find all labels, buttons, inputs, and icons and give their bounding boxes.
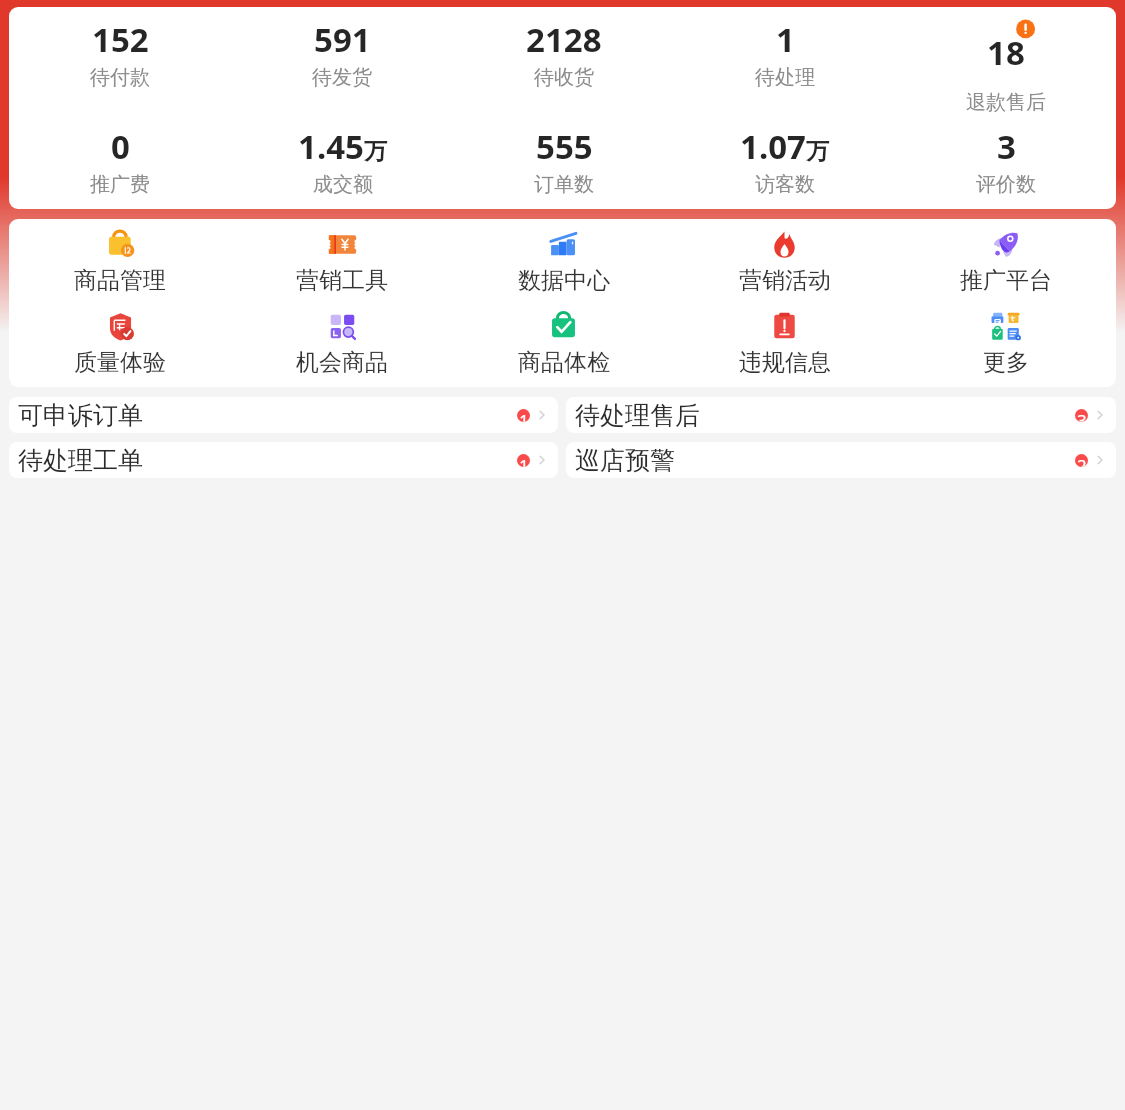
staticText: 巡店预警 (575, 445, 675, 476)
staticText: 3 (997, 124, 1016, 169)
staticText: 评价数 (976, 172, 1036, 197)
staticText: 2 (1077, 454, 1087, 467)
button[interactable]: 数据中心 (453, 227, 674, 297)
button[interactable]: 商品体检 (453, 309, 674, 379)
button[interactable]: 营销活动 (674, 227, 895, 297)
staticText: 1 (519, 409, 529, 422)
staticText: 质量体验 (74, 348, 166, 377)
staticText: 152 (92, 17, 149, 62)
staticText: 待发货 (312, 65, 372, 90)
staticText: 2128 (526, 17, 602, 62)
button[interactable]: 待处理工单 (9, 442, 558, 478)
button[interactable]: 可申诉订单 (9, 397, 558, 433)
staticText: 营销活动 (739, 266, 831, 295)
staticText: 待处理 (755, 65, 815, 90)
staticText: 3 (1077, 409, 1087, 422)
staticText: 数据中心 (518, 266, 610, 295)
staticText: 成交额 (313, 172, 373, 197)
staticText: 机会商品 (296, 348, 388, 377)
button[interactable]: 机会商品 (231, 309, 453, 379)
staticText: 商品体检 (518, 348, 610, 377)
staticText: 1.07万 (740, 124, 829, 169)
button[interactable]: 待处理售后 (566, 397, 1116, 433)
staticText: 订单数 (534, 172, 594, 197)
staticText: 访客数 (755, 172, 815, 197)
button[interactable]: 2128 (453, 17, 674, 90)
button[interactable]: 巡店预警 (566, 442, 1116, 478)
button[interactable]: 商品管理 (9, 227, 231, 297)
button[interactable]: 555 (453, 124, 674, 197)
button[interactable]: 营销工具 (231, 227, 453, 297)
button[interactable]: 1 (674, 17, 895, 90)
staticText: 待处理售后 (575, 400, 700, 431)
staticText: 1 (776, 17, 795, 62)
staticText: 商品管理 (74, 266, 166, 295)
staticText: 更多 (983, 348, 1029, 377)
staticText: 推广费 (90, 172, 150, 197)
staticText: 待收货 (534, 65, 594, 90)
button[interactable]: 152 (9, 17, 231, 90)
staticText: 营销工具 (296, 266, 388, 295)
staticText: 可申诉订单 (18, 400, 143, 431)
button[interactable]: 质量体验 (9, 309, 231, 379)
other: 警告 (971, 17, 1041, 87)
staticText: 1 (519, 454, 529, 467)
staticText: 退款售后 (966, 90, 1046, 115)
button[interactable]: 0 (9, 124, 231, 197)
staticText: 1.45万 (298, 124, 387, 169)
staticText: 18 (987, 30, 1025, 75)
button[interactable]: 1.45万 (231, 124, 453, 197)
staticText: 违规信息 (739, 348, 831, 377)
staticText: 待处理工单 (18, 445, 143, 476)
button[interactable]: 3 (895, 124, 1116, 197)
button[interactable]: 更多 (895, 309, 1116, 379)
button[interactable]: 1.07万 (674, 124, 895, 197)
staticText: 待付款 (90, 65, 150, 90)
staticText: 591 (314, 17, 371, 62)
button[interactable]: 推广平台 (895, 227, 1116, 297)
staticText: 555 (536, 124, 593, 169)
button[interactable]: 591 (231, 17, 453, 90)
staticText: 推广平台 (960, 266, 1052, 295)
button[interactable]: 18 (895, 17, 1116, 115)
button[interactable]: 违规信息 (674, 309, 895, 379)
staticText: 0 (111, 124, 130, 169)
